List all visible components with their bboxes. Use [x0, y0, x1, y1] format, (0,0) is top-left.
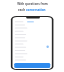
staticText: each [18, 8, 26, 12]
staticText: conversation [26, 8, 46, 12]
button[interactable]: Get started [0, 0, 64, 72]
staticText: With questions from [17, 2, 48, 6]
